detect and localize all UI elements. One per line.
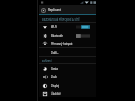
button[interactable]: On [76,25,90,29]
staticText: Přenosný hotspot [51,42,73,46]
staticText: Displej [51,84,60,88]
button[interactable]: Zvuk [39,73,96,81]
staticText: Replicant [48,8,62,12]
staticText: zařízení [42,59,52,63]
button[interactable]: Přenosný hotspot [39,40,96,48]
staticText: Další... [51,51,60,55]
button[interactable]: Off [76,34,90,38]
staticText: Bluetooth [51,34,64,38]
staticText: Úložiště [51,92,61,96]
button[interactable]: Gesta [39,65,96,73]
button[interactable]: Displej [39,82,96,90]
button[interactable]: Bluetooth [39,32,96,40]
other: App icon [41,8,46,13]
staticText: Zvuk [51,75,57,79]
staticText: Gesta [51,67,58,71]
staticText: BEZDRÁTOVÁ PŘIPOJENÍ A SÍTĚ [42,18,80,22]
staticText: Wi-Fi [51,25,57,29]
button[interactable]: App icon [39,5,96,15]
button[interactable]: Další... [39,49,96,57]
button[interactable]: Wi-Fi [39,23,96,31]
button[interactable]: Úložiště [39,90,96,98]
